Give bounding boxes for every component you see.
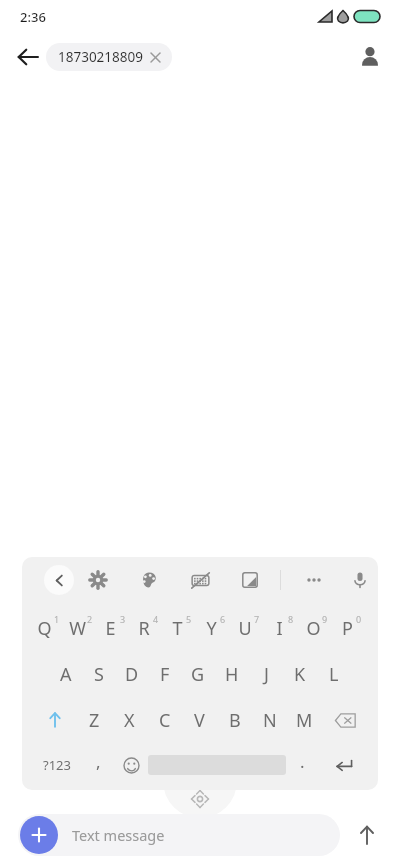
staticText: 9 (322, 613, 328, 625)
staticText: B (229, 708, 241, 733)
staticText: P (342, 616, 353, 641)
button[interactable]: T (164, 605, 198, 651)
staticText: Q (37, 616, 52, 641)
button[interactable]: N (252, 697, 287, 743)
button[interactable]: M (287, 697, 322, 743)
staticText: , (96, 750, 101, 773)
staticText: X (124, 708, 135, 733)
staticText: 2:36 (20, 8, 46, 26)
staticText: 18730218809 (58, 48, 143, 66)
button[interactable]: P (334, 605, 368, 651)
button[interactable]: X (112, 697, 147, 743)
staticText: Y (206, 616, 217, 641)
button[interactable]: I (266, 605, 300, 651)
button[interactable]: Back (8, 37, 48, 77)
button[interactable]: E (98, 605, 131, 651)
staticText: 5 (186, 613, 192, 625)
staticText: . (300, 750, 305, 773)
button[interactable]: Enter (319, 743, 368, 787)
button[interactable]: G (181, 651, 215, 697)
button[interactable]: R (131, 605, 164, 651)
button[interactable]: F (148, 651, 181, 697)
button[interactable]: Backspace (322, 697, 368, 743)
button[interactable]: Y (198, 605, 232, 651)
staticText: I (276, 616, 283, 641)
button[interactable]: J (249, 651, 283, 697)
button[interactable]: Z (77, 697, 112, 743)
staticText: 1 (54, 613, 60, 625)
button[interactable]: . (286, 743, 319, 787)
button[interactable]: 18730218809 (46, 43, 172, 71)
staticText: 4 (153, 613, 159, 625)
staticText: F (160, 662, 170, 687)
button[interactable]: Contact (350, 37, 390, 77)
staticText: N (263, 708, 277, 733)
button[interactable]: Hide keyboard (183, 563, 217, 597)
staticText: Z (89, 708, 100, 733)
staticText: 7 (254, 613, 260, 625)
button[interactable]: Move cursor (163, 770, 237, 818)
staticText: 6 (220, 613, 226, 625)
staticText: 2 (87, 613, 93, 625)
button[interactable]: V (182, 697, 217, 743)
button[interactable]: H (215, 651, 249, 697)
staticText: 3 (120, 613, 126, 625)
button[interactable]: Shift (32, 697, 77, 743)
button[interactable]: S (82, 651, 115, 697)
button[interactable]: K (283, 651, 317, 697)
staticText: E (105, 616, 116, 641)
staticText: O (306, 616, 321, 641)
staticText: V (194, 708, 205, 733)
button[interactable]: , (82, 743, 115, 787)
staticText: J (264, 662, 269, 687)
button[interactable]: Q (32, 605, 65, 651)
staticText: 8 (288, 613, 294, 625)
staticText: R (138, 616, 150, 641)
staticText: U (238, 616, 252, 641)
staticText: C (159, 708, 171, 733)
staticText: M (296, 708, 313, 733)
button[interactable]: U (232, 605, 266, 651)
button[interactable]: Send (346, 814, 388, 856)
button[interactable]: Resize (233, 563, 267, 597)
button[interactable]: ?123 (32, 743, 82, 787)
staticText: K (294, 662, 306, 687)
button[interactable]: Attach (20, 816, 58, 854)
button[interactable]: Settings (81, 563, 115, 597)
button[interactable]: O (300, 605, 334, 651)
staticText: S (94, 662, 104, 687)
staticText: A (60, 662, 72, 687)
staticText: H (225, 662, 239, 687)
button[interactable]: Voice input (343, 563, 377, 597)
staticText: W (69, 616, 86, 641)
button[interactable]: D (115, 651, 148, 697)
button[interactable]: Collapse toolbar (44, 565, 74, 595)
staticText: D (125, 662, 139, 687)
button[interactable]: L (317, 651, 351, 697)
button[interactable]: B (217, 697, 252, 743)
button[interactable]: Emoji (115, 743, 148, 787)
button[interactable]: W (65, 605, 98, 651)
button[interactable]: Attach (18, 814, 340, 856)
button[interactable]: More options (297, 563, 331, 597)
staticText: ?123 (43, 756, 71, 774)
staticText: T (172, 616, 183, 641)
staticText: L (329, 662, 339, 687)
button[interactable]: Theme (132, 563, 166, 597)
staticText: Text message (72, 825, 165, 845)
button[interactable]: A (49, 651, 82, 697)
button[interactable]: C (147, 697, 182, 743)
staticText: G (191, 662, 205, 687)
staticText: 0 (356, 613, 362, 625)
